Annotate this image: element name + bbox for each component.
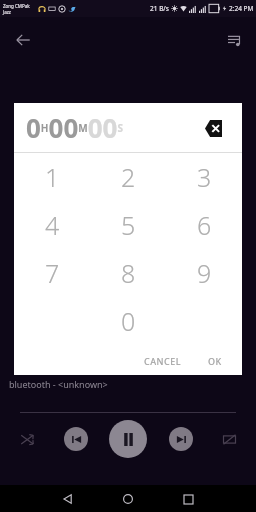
button[interactable]: 4 [14,201,90,249]
button[interactable]: Back [8,25,38,55]
staticText: 4 [45,208,60,242]
button[interactable]: Repeat [214,424,244,454]
staticText: 5 [121,208,136,242]
button[interactable]: 1 [14,153,90,201]
staticText: 2:24 PM [229,4,254,13]
staticText: 9 [197,256,212,290]
button[interactable]: 7 [14,249,90,297]
staticText: OK [208,355,222,367]
button[interactable]: Home [116,487,140,511]
staticText: bluetooth - <unknown> [9,378,108,390]
button[interactable]: 6 [166,201,242,249]
button[interactable]: OK [198,350,232,372]
button[interactable]: CANCEL [134,350,192,372]
staticText: 21 B/s [150,4,169,13]
button[interactable]: 9 [166,249,242,297]
staticText: CANCEL [144,355,182,367]
staticText: 0H00M00S [26,110,123,145]
button[interactable]: 8 [90,249,166,297]
button[interactable]: 5 [90,201,166,249]
button[interactable]: Previous [64,427,88,451]
button[interactable]: Pause [109,420,147,458]
button[interactable]: Back [56,487,80,511]
staticText: 6 [197,208,212,242]
button[interactable]: Next [169,427,193,451]
staticText: Zong CMPak [3,3,30,9]
staticText: 8 [121,256,136,290]
staticText: 7 [45,256,60,290]
staticText: Jazz [3,9,11,15]
button[interactable]: 0 [90,297,166,345]
staticText: 0 [121,304,136,338]
button[interactable]: 3 [166,153,242,201]
button[interactable]: 2 [90,153,166,201]
button[interactable]: Backspace [198,113,228,143]
staticText: 3 [197,160,212,194]
button[interactable]: Shuffle [12,424,42,454]
button[interactable]: Recents [176,487,200,511]
staticText: 1 [45,160,60,194]
button[interactable]: Play queue [220,25,250,55]
staticText: 2 [121,160,136,194]
